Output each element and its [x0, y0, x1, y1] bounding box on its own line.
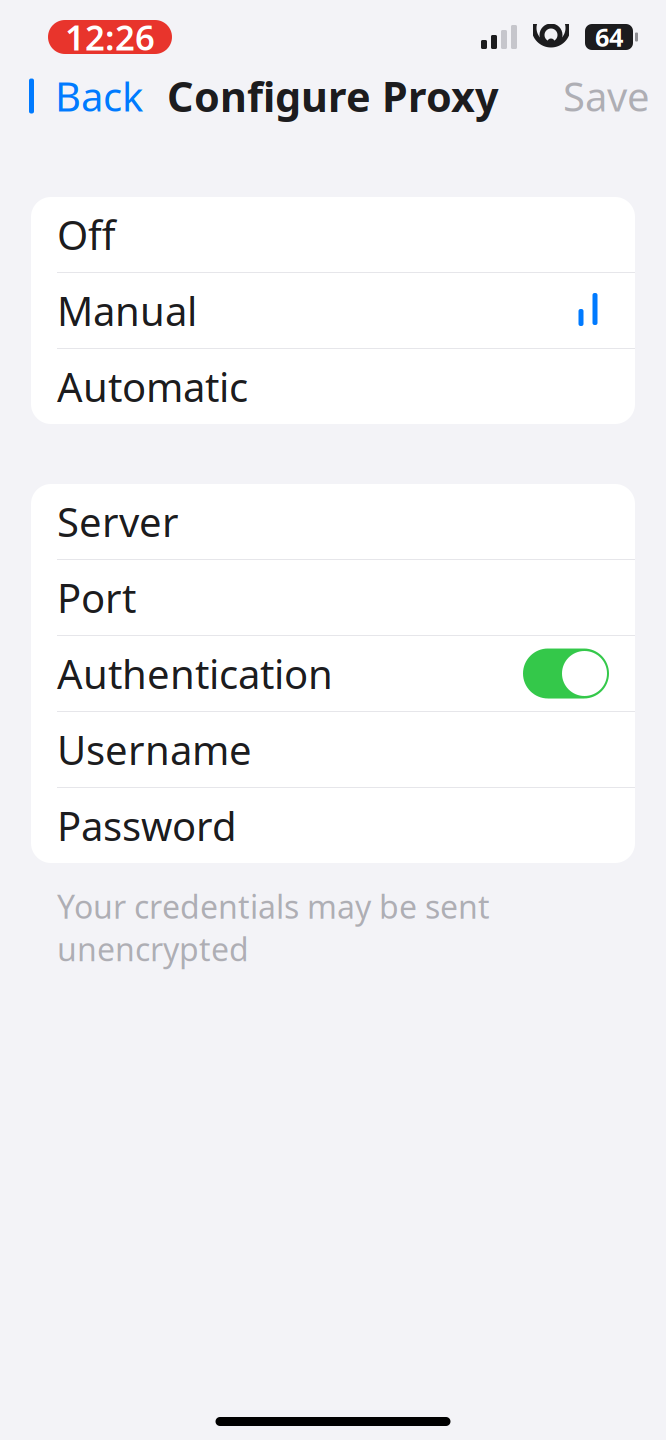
staticText: Back [55, 69, 143, 122]
button[interactable]: Off [31, 197, 635, 273]
staticText: Configure Proxy [167, 69, 499, 123]
staticText: Password [57, 799, 237, 852]
staticText: Off [57, 208, 116, 261]
button[interactable]: Server [31, 484, 635, 560]
button[interactable]: Username [31, 712, 635, 788]
staticText: 64 [595, 20, 623, 54]
button[interactable]: Manual [31, 273, 635, 349]
staticText: Your credentials may be sent unencrypted [57, 885, 490, 970]
button[interactable]: Back [8, 61, 159, 130]
staticText: Save [563, 69, 650, 122]
button[interactable]: Password [31, 788, 635, 863]
button[interactable]: Automatic [31, 349, 635, 424]
staticText: Port [57, 571, 136, 624]
staticText: Authentication [57, 647, 333, 700]
staticText: 12:26 [65, 14, 155, 60]
staticText: Server [57, 495, 179, 548]
button[interactable]: Port [31, 560, 635, 636]
button[interactable]: Save [555, 61, 658, 130]
staticText: Username [57, 723, 252, 776]
button[interactable]: Authentication [523, 648, 609, 698]
staticText: Automatic [57, 360, 248, 413]
staticText: Manual [57, 284, 197, 337]
